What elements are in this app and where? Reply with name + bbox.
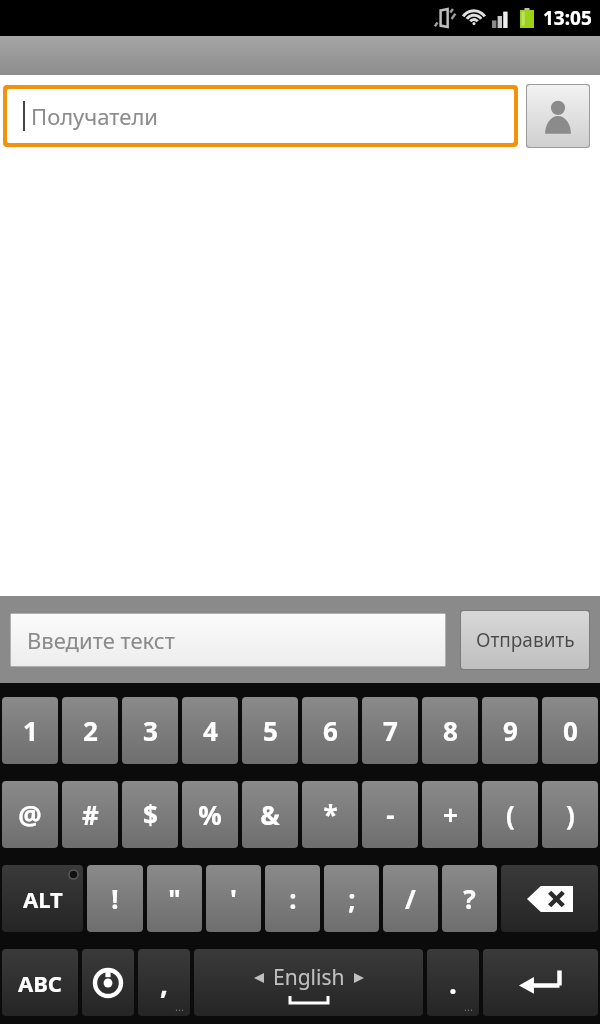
button[interactable]: ! bbox=[87, 865, 143, 932]
staticText: @ bbox=[18, 797, 42, 832]
staticText: * bbox=[323, 797, 338, 832]
button[interactable]: 5 bbox=[242, 697, 298, 764]
staticText: 8 bbox=[443, 713, 458, 748]
button[interactable]: 0 bbox=[542, 697, 598, 764]
staticText: 5 bbox=[263, 713, 278, 748]
staticText: ... bbox=[464, 999, 473, 1014]
staticText: , bbox=[160, 964, 168, 1002]
button[interactable]: Backspace bbox=[501, 865, 598, 932]
staticText: / bbox=[405, 881, 416, 916]
staticText: # bbox=[82, 797, 99, 832]
button[interactable]: Choose contact bbox=[527, 85, 589, 147]
button[interactable]: ( bbox=[482, 781, 538, 848]
staticText: ; bbox=[348, 881, 356, 916]
button[interactable]: 4 bbox=[182, 697, 238, 764]
staticText: English bbox=[273, 963, 345, 992]
staticText: 3 bbox=[143, 713, 158, 748]
button[interactable]: Enter bbox=[483, 949, 598, 1016]
button[interactable]: / bbox=[383, 865, 438, 932]
button[interactable]: 6 bbox=[302, 697, 358, 764]
staticText: Отправить bbox=[476, 627, 575, 653]
staticText: ' bbox=[230, 881, 237, 916]
staticText: 0 bbox=[563, 713, 578, 748]
button[interactable]: # bbox=[62, 781, 118, 848]
staticText: 4 bbox=[203, 713, 218, 748]
staticText: 7 bbox=[383, 713, 398, 748]
button[interactable]: - bbox=[362, 781, 418, 848]
staticText: 6 bbox=[323, 713, 338, 748]
button[interactable]: : bbox=[265, 865, 320, 932]
button[interactable]: . bbox=[427, 949, 479, 1016]
button[interactable]: 9 bbox=[482, 697, 538, 764]
button[interactable]: Получатели bbox=[7, 89, 514, 143]
staticText: 2 bbox=[83, 713, 98, 748]
button[interactable]: % bbox=[182, 781, 238, 848]
staticText: 9 bbox=[503, 713, 518, 748]
button[interactable]: $ bbox=[122, 781, 178, 848]
button[interactable]: & bbox=[242, 781, 298, 848]
staticText: " bbox=[168, 881, 181, 916]
button[interactable]: * bbox=[302, 781, 358, 848]
button[interactable]: Space, English bbox=[194, 949, 423, 1016]
button[interactable]: 3 bbox=[122, 697, 178, 764]
button[interactable]: + bbox=[422, 781, 478, 848]
button[interactable]: ) bbox=[542, 781, 598, 848]
staticText: ! bbox=[111, 881, 119, 916]
button[interactable]: ABC bbox=[2, 949, 78, 1016]
staticText: ... bbox=[175, 999, 184, 1014]
staticText: . bbox=[449, 964, 457, 1002]
button[interactable]: Введите текст bbox=[11, 614, 445, 666]
button[interactable]: , bbox=[138, 949, 190, 1016]
staticText: ? bbox=[463, 881, 476, 916]
button[interactable]: Input method settings bbox=[82, 949, 134, 1016]
button[interactable]: @ bbox=[2, 781, 58, 848]
staticText: Введите текст bbox=[27, 625, 175, 655]
button[interactable]: ' bbox=[206, 865, 261, 932]
staticText: + bbox=[443, 797, 458, 832]
staticText: ALT bbox=[23, 884, 63, 914]
button[interactable]: ; bbox=[324, 865, 379, 932]
button[interactable]: Отправить bbox=[461, 611, 589, 669]
button[interactable]: 7 bbox=[362, 697, 418, 764]
button[interactable]: ALT bbox=[2, 865, 83, 932]
staticText: ) bbox=[566, 797, 575, 832]
staticText: ( bbox=[506, 797, 515, 832]
button[interactable]: ? bbox=[442, 865, 497, 932]
staticText: % bbox=[198, 797, 222, 832]
staticText: ABC bbox=[18, 968, 62, 998]
staticText: & bbox=[260, 797, 280, 832]
staticText: - bbox=[386, 797, 395, 832]
button[interactable]: " bbox=[147, 865, 202, 932]
button[interactable]: 8 bbox=[422, 697, 478, 764]
staticText: Получатели bbox=[31, 101, 158, 131]
button[interactable]: 2 bbox=[62, 697, 118, 764]
button[interactable]: 1 bbox=[2, 697, 58, 764]
staticText: 13:05 bbox=[543, 5, 592, 31]
staticText: $ bbox=[143, 797, 158, 832]
staticText: : bbox=[289, 881, 297, 916]
staticText: 1 bbox=[23, 713, 38, 748]
